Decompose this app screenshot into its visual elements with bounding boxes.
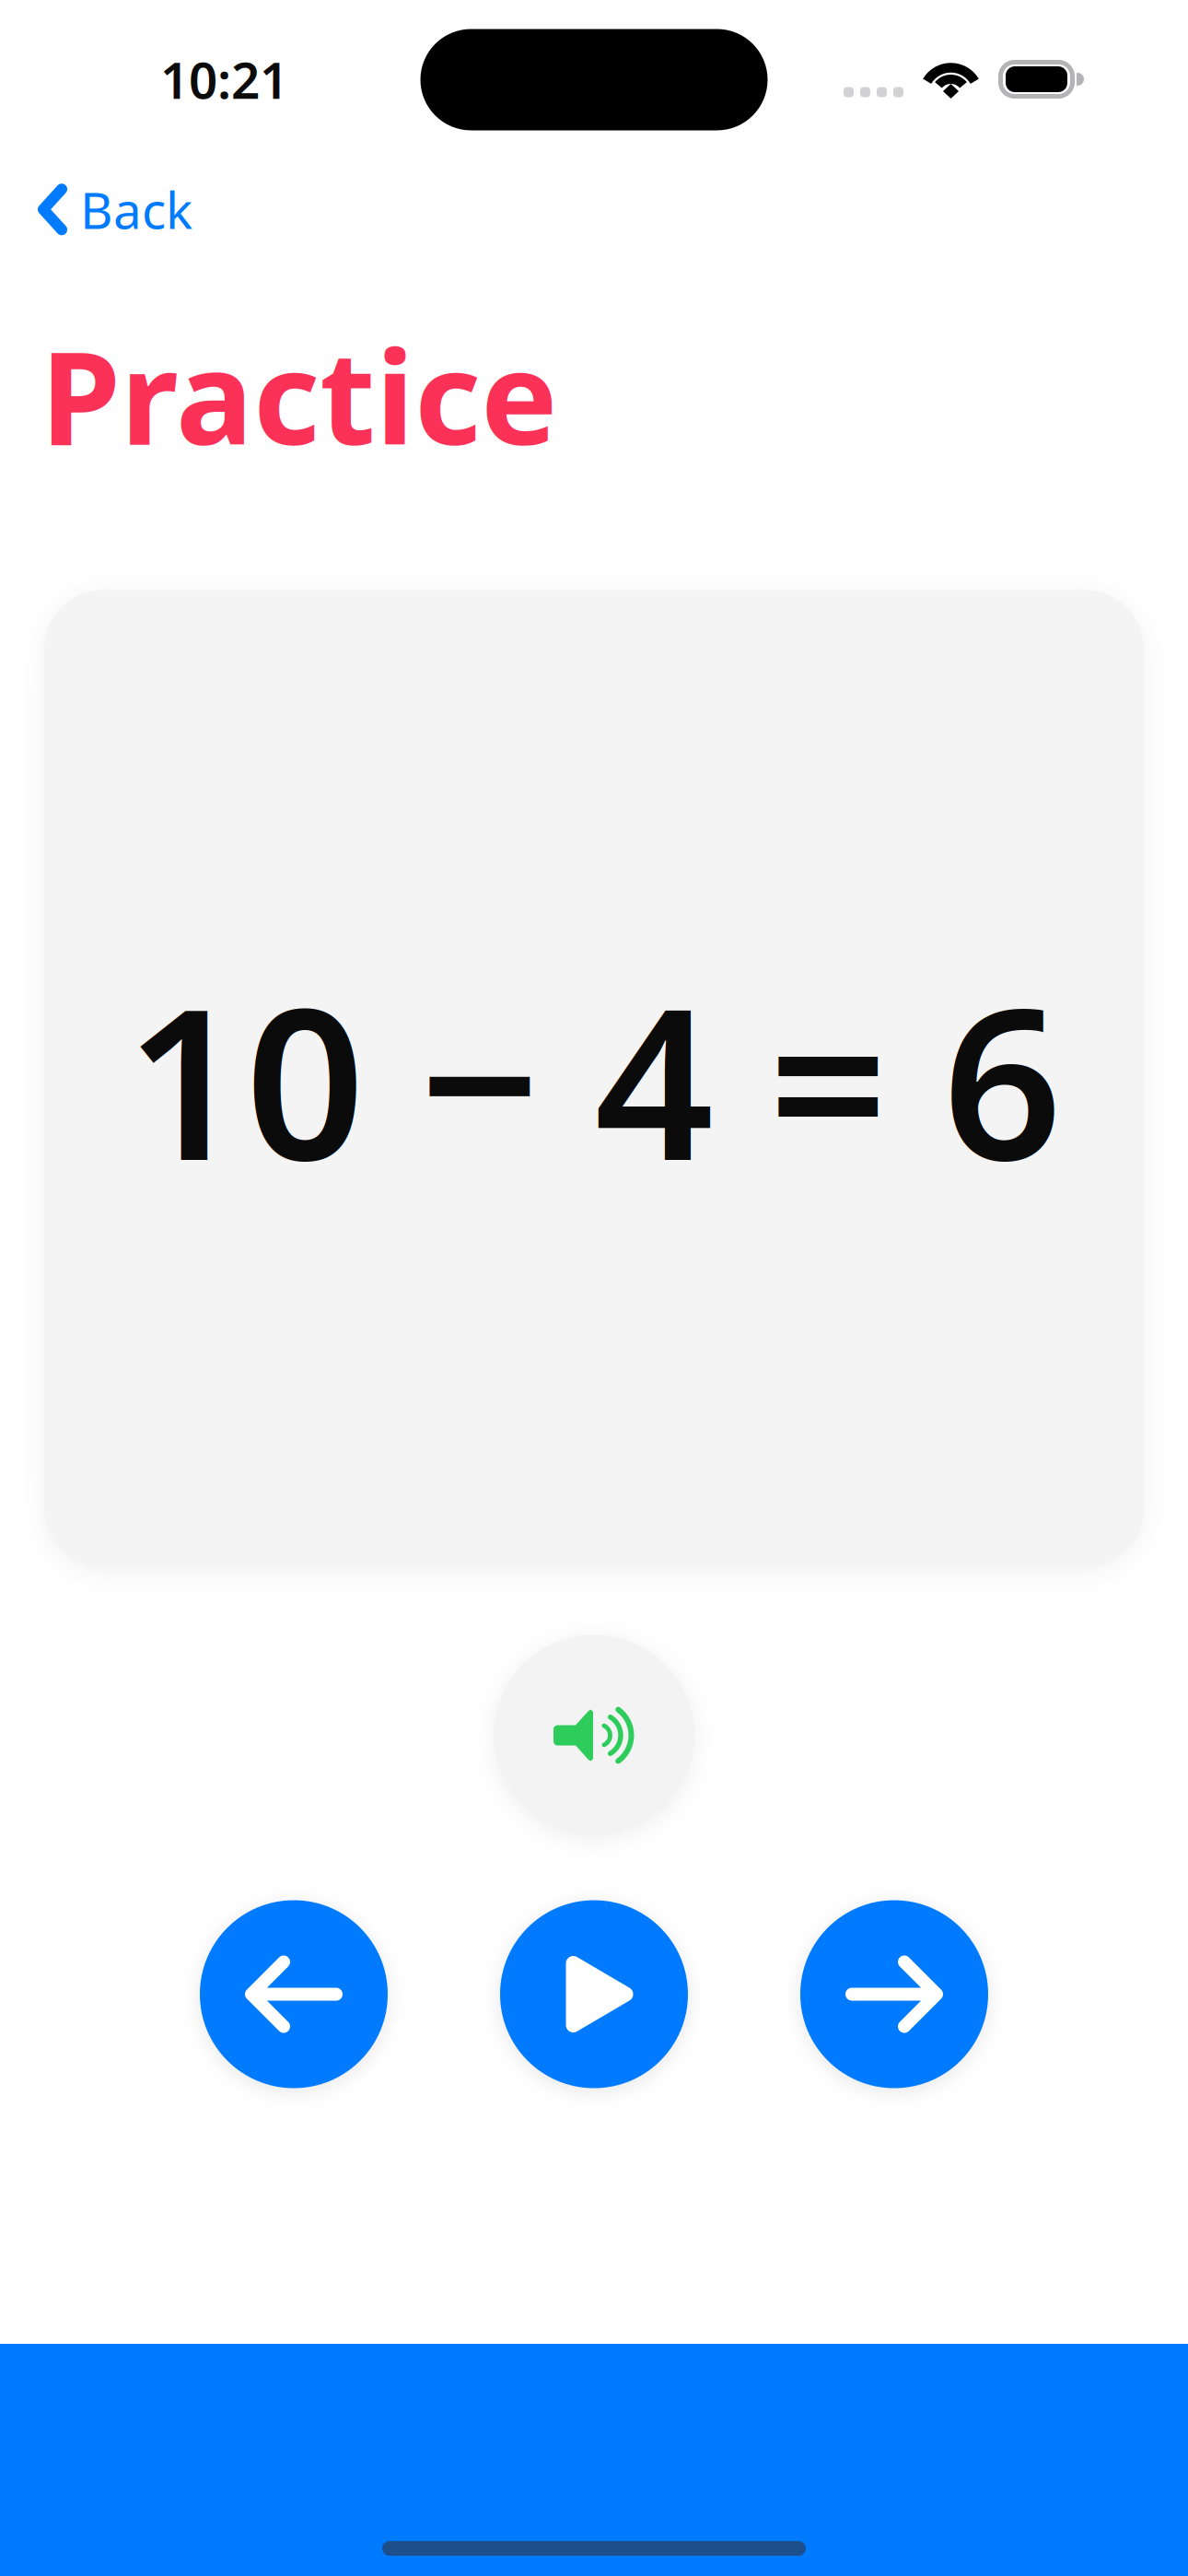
button[interactable]: Play audio <box>494 1635 694 1836</box>
button[interactable]: Next card <box>800 1900 988 2088</box>
button[interactable]: Back <box>0 163 215 256</box>
button[interactable]: Previous card <box>200 1900 388 2088</box>
staticText: Back <box>80 176 192 243</box>
staticText: Practice <box>41 309 558 480</box>
button[interactable]: Play <box>500 1900 688 2088</box>
staticText: 10 − 4 = 6 <box>126 940 1062 1218</box>
staticText: 10:21 <box>160 46 288 113</box>
